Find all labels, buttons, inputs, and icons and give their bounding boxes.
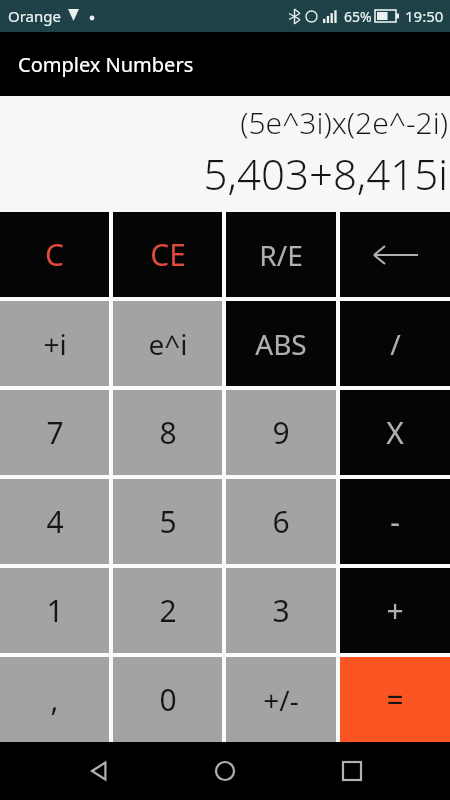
button[interactable]: 1 xyxy=(0,568,109,653)
staticText: / xyxy=(390,325,401,363)
staticText: + xyxy=(386,590,404,631)
button[interactable]: X xyxy=(340,390,450,475)
staticText: 6 xyxy=(272,501,290,542)
button[interactable]: e^i xyxy=(113,301,222,386)
button[interactable]: 8 xyxy=(113,390,222,475)
staticText: C xyxy=(45,234,64,275)
button[interactable]: Backspace xyxy=(340,212,450,297)
button[interactable]: = xyxy=(340,657,450,742)
staticText: 7 xyxy=(46,412,64,453)
button[interactable]: , xyxy=(0,657,109,742)
staticText: +/- xyxy=(263,681,299,719)
button[interactable]: 3 xyxy=(226,568,336,653)
staticText: 4 xyxy=(46,501,64,542)
staticText: ABS xyxy=(255,325,307,363)
button[interactable]: / xyxy=(340,301,450,386)
button[interactable]: 7 xyxy=(0,390,109,475)
button[interactable]: + xyxy=(340,568,450,653)
staticText: 2 xyxy=(159,590,177,631)
staticText: - xyxy=(390,501,400,542)
button[interactable]: CE xyxy=(113,212,222,297)
button[interactable]: Home xyxy=(197,743,253,799)
staticText: 9 xyxy=(272,412,290,453)
button[interactable]: Back xyxy=(71,743,127,799)
staticText: 19:50 xyxy=(405,6,444,26)
button[interactable]: 6 xyxy=(226,479,336,564)
button[interactable]: Recents xyxy=(324,743,380,799)
staticText: 1 xyxy=(46,590,64,631)
staticText: +i xyxy=(43,325,67,363)
button[interactable]: C xyxy=(0,212,109,297)
staticText: Orange xyxy=(8,6,61,26)
button[interactable]: 4 xyxy=(0,479,109,564)
staticText: Complex Numbers xyxy=(18,51,194,78)
button[interactable]: R/E xyxy=(226,212,336,297)
staticText: 5 xyxy=(159,501,177,542)
staticText: , xyxy=(50,679,59,720)
staticText: X xyxy=(386,412,404,453)
staticText: CE xyxy=(150,234,186,275)
staticText: 5,403+8,415i xyxy=(203,145,448,202)
staticText: = xyxy=(386,679,404,720)
staticText: (5e^3i)x(2e^-2i) xyxy=(240,102,448,143)
button[interactable]: +i xyxy=(0,301,109,386)
staticText: R/E xyxy=(259,236,303,274)
button[interactable]: - xyxy=(340,479,450,564)
button[interactable]: 2 xyxy=(113,568,222,653)
staticText: 0 xyxy=(159,679,177,720)
staticText: 3 xyxy=(272,590,290,631)
staticText: e^i xyxy=(148,325,188,363)
button[interactable]: 0 xyxy=(113,657,222,742)
button[interactable]: 9 xyxy=(226,390,336,475)
button[interactable]: ABS xyxy=(226,301,336,386)
button[interactable]: +/- xyxy=(226,657,336,742)
staticText: 8 xyxy=(159,412,177,453)
staticText: 65% xyxy=(344,7,372,26)
button[interactable]: 5 xyxy=(113,479,222,564)
